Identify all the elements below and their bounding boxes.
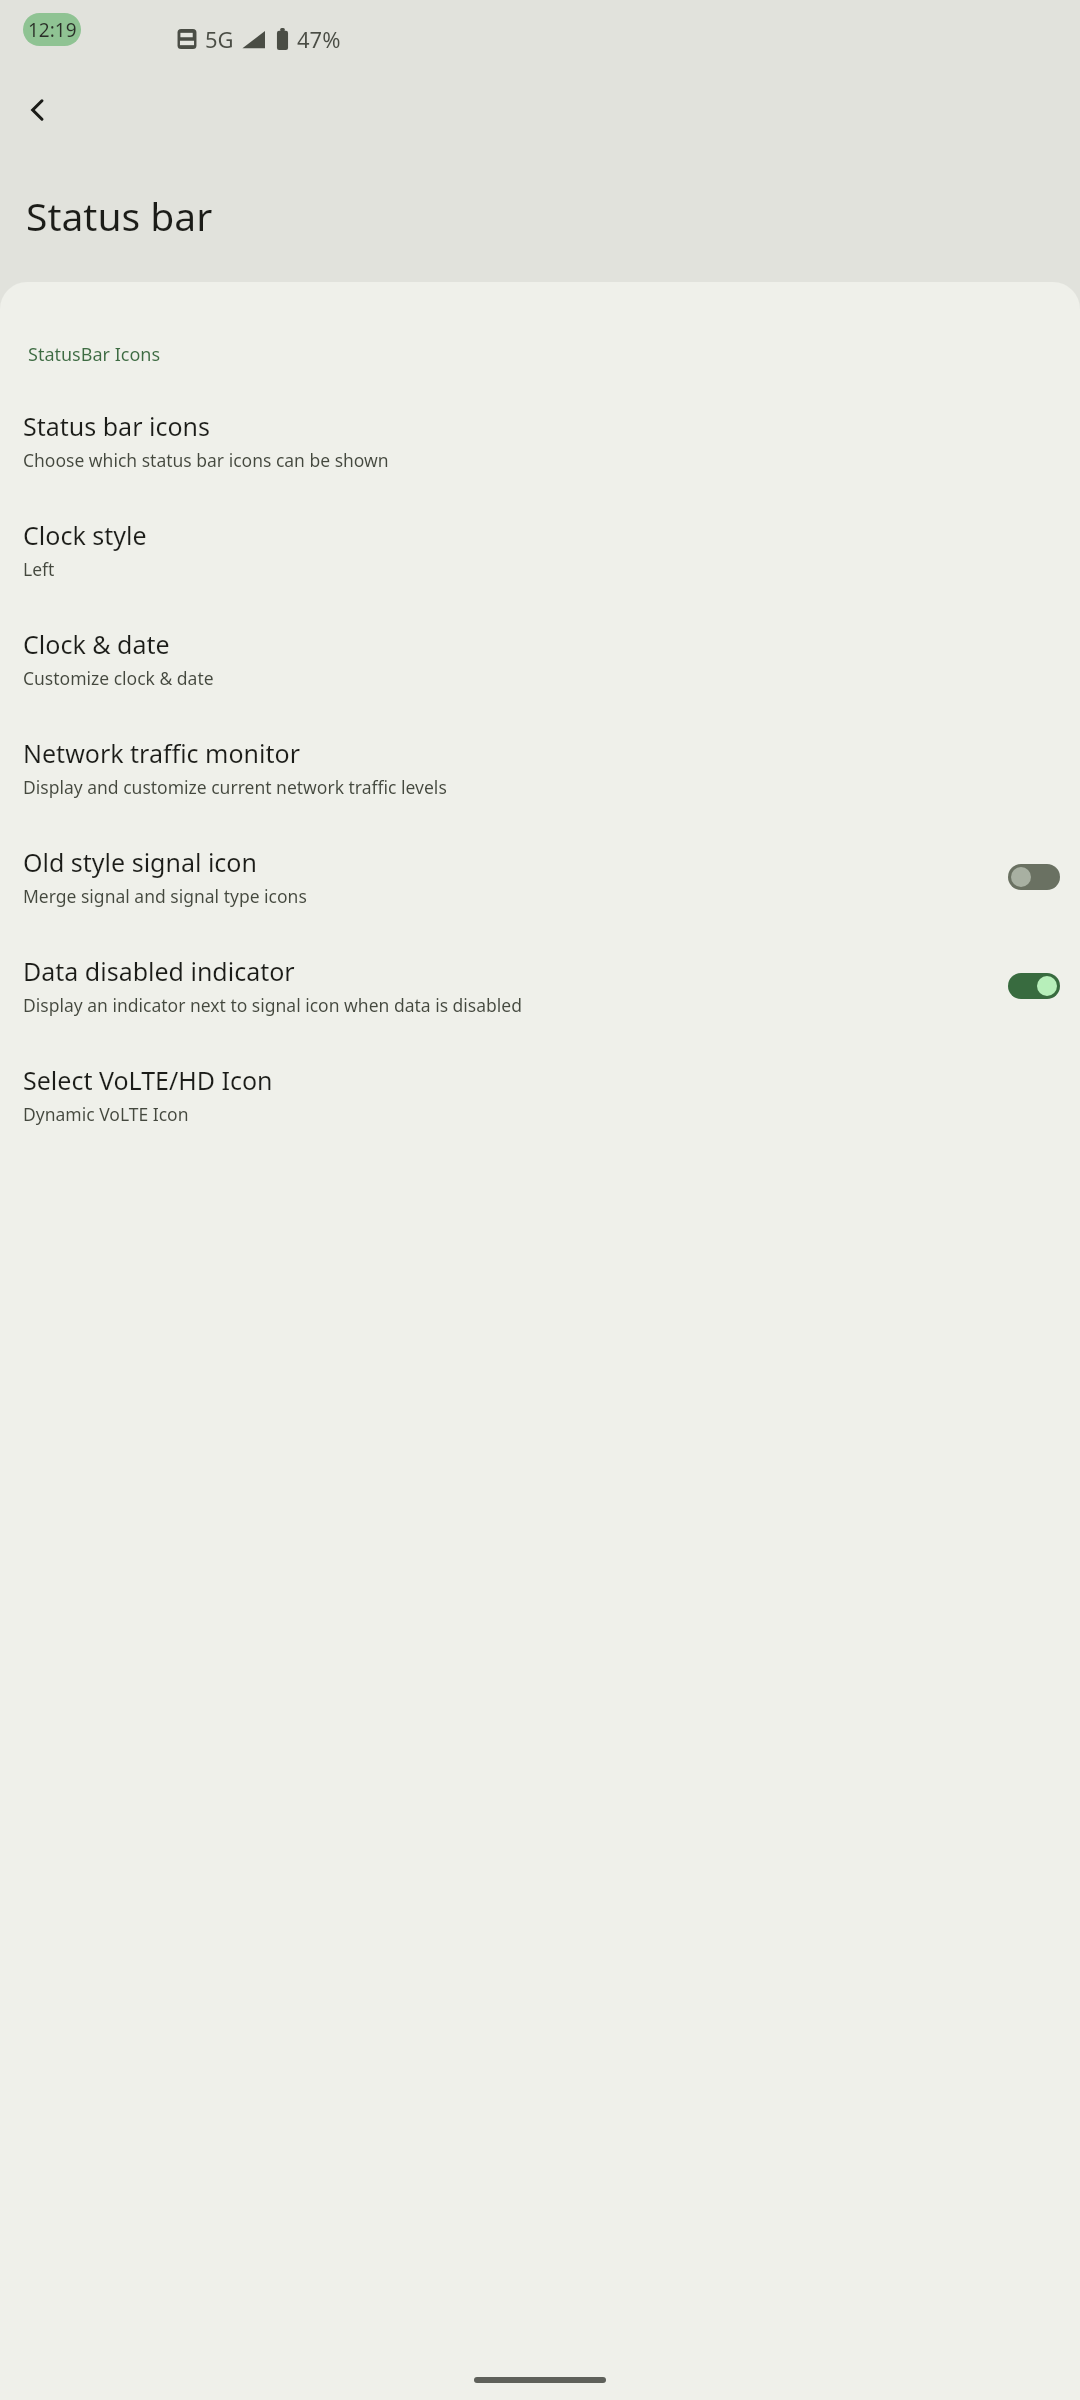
staticText: Old style signal icon: [23, 845, 257, 879]
staticText: Status bar icons: [23, 409, 210, 443]
staticText: 12:19: [28, 17, 77, 43]
button[interactable]: Select VoLTE/HD Icon: [0, 1049, 1080, 1140]
staticText: Status bar: [26, 189, 213, 242]
button[interactable]: Clock & date: [0, 613, 1080, 704]
button[interactable]: Status bar icons: [0, 395, 1080, 486]
staticText: Choose which status bar icons can be sho…: [23, 448, 389, 472]
staticText: Clock style: [23, 518, 147, 552]
staticText: 5G: [205, 24, 234, 54]
staticText: Merge signal and signal type icons: [23, 884, 307, 908]
staticText: StatusBar Icons: [28, 342, 161, 367]
staticText: Network traffic monitor: [23, 736, 300, 770]
staticText: Display and customize current network tr…: [23, 775, 447, 799]
button[interactable]: Network traffic monitor: [0, 722, 1080, 813]
button[interactable]: Back: [12, 84, 64, 136]
staticText: Customize clock & date: [23, 666, 214, 690]
staticText: 47%: [297, 24, 341, 54]
staticText: Dynamic VoLTE Icon: [23, 1102, 189, 1126]
button[interactable]: Clock style: [0, 504, 1080, 595]
button[interactable]: Data disabled indicator: [0, 940, 1080, 1031]
staticText: Data disabled indicator: [23, 954, 295, 988]
button[interactable]: Old style signal icon: [0, 831, 1080, 922]
staticText: Left: [23, 557, 55, 581]
button[interactable]: On: [1008, 973, 1060, 999]
staticText: Clock & date: [23, 627, 170, 661]
staticText: Select VoLTE/HD Icon: [23, 1063, 273, 1097]
button[interactable]: Off: [1008, 864, 1060, 890]
staticText: Display an indicator next to signal icon…: [23, 993, 522, 1017]
